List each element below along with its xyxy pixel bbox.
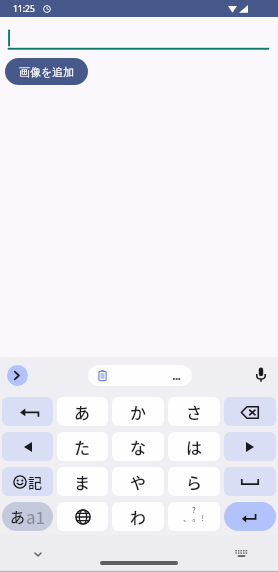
staticText: 11:25 [13, 3, 35, 15]
staticText: は [186, 435, 203, 458]
button[interactable]: あ [2, 502, 53, 531]
button[interactable] [224, 467, 276, 496]
button[interactable]: あ [57, 397, 108, 426]
button[interactable]: 画像を追加 [5, 58, 88, 85]
staticText: 、。! [183, 512, 206, 524]
staticText: ? [192, 504, 196, 516]
button[interactable]: さ [168, 397, 220, 426]
staticText: 記 [28, 472, 42, 492]
staticText: わ [130, 505, 147, 528]
button[interactable]: Home [100, 561, 178, 565]
button[interactable]: Switch input method [222, 535, 260, 572]
button[interactable] [224, 502, 276, 531]
button[interactable]: Show toolbar [7, 365, 28, 386]
staticText: あ [74, 400, 91, 423]
staticText: さ [186, 400, 203, 423]
button[interactable] [224, 397, 276, 426]
button[interactable]: ? [168, 502, 220, 531]
staticText: か [130, 400, 147, 423]
staticText: a1 [26, 504, 46, 529]
staticText: ま [74, 470, 91, 493]
button[interactable] [2, 397, 53, 426]
button[interactable]: ま [57, 467, 108, 496]
button[interactable]: わ [112, 502, 164, 531]
staticText: た [74, 435, 91, 458]
button[interactable]: や [112, 467, 164, 496]
staticText: な [130, 435, 147, 458]
staticText: あ [10, 506, 26, 528]
button[interactable]: か [112, 397, 164, 426]
button[interactable]: は [168, 432, 220, 461]
button[interactable]: ら [168, 467, 220, 496]
staticText: ら [186, 470, 203, 493]
button[interactable] [224, 432, 276, 461]
button[interactable]: な [112, 432, 164, 461]
button[interactable]: Voice input [251, 365, 271, 385]
button[interactable]: 記 [2, 467, 53, 496]
button[interactable]: た [57, 432, 108, 461]
staticText: 画像を追加 [19, 65, 75, 79]
button[interactable] [88, 365, 192, 386]
staticText: や [130, 470, 147, 493]
button[interactable] [57, 502, 108, 531]
button[interactable]: Hide keyboard [19, 535, 57, 572]
button[interactable] [2, 432, 53, 461]
